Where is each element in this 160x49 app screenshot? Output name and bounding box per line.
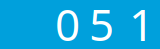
staticText: 1 (129, 0, 154, 49)
staticText: 5 (89, 0, 114, 49)
staticText: 0 (55, 0, 80, 49)
